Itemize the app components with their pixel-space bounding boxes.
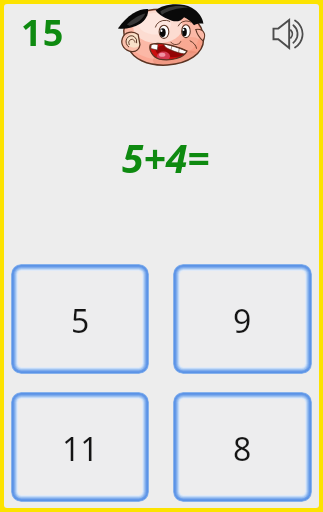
staticText: 5+4= [122, 131, 210, 184]
staticText: 8 [233, 427, 252, 471]
staticText: 5 [71, 299, 90, 343]
button[interactable]: Sound [263, 5, 313, 62]
button[interactable]: 11 [11, 392, 149, 502]
staticText: 15 [21, 8, 65, 57]
button[interactable]: 5 [11, 264, 149, 374]
staticText: 9 [233, 299, 252, 343]
button[interactable]: 9 [173, 264, 312, 374]
button[interactable]: 8 [173, 392, 312, 502]
staticText: 11 [62, 427, 99, 471]
